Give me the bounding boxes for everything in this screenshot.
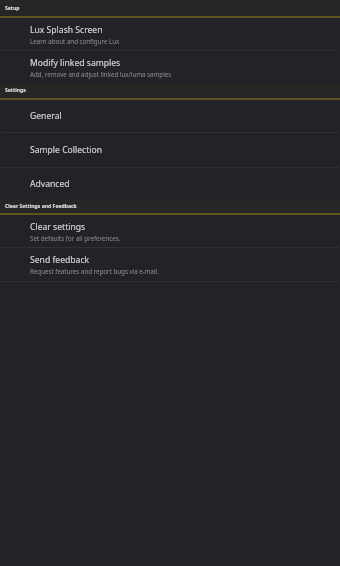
staticText: Sample Collection bbox=[30, 144, 103, 156]
button[interactable]: Advanced bbox=[0, 168, 340, 199]
button[interactable]: Lux Splash Screen bbox=[0, 18, 340, 50]
button[interactable]: Sample Collection bbox=[0, 133, 340, 167]
button[interactable]: Send feedback bbox=[0, 248, 340, 281]
staticText: Send feedback bbox=[30, 254, 90, 266]
staticText: Settings bbox=[5, 87, 26, 94]
staticText: Modify linked samples bbox=[30, 57, 121, 69]
staticText: Lux Splash Screen bbox=[30, 24, 103, 36]
staticText: Add, remove and adjust linked lux/luma s… bbox=[30, 70, 172, 78]
button[interactable]: General bbox=[0, 100, 340, 132]
staticText: Advanced bbox=[30, 178, 70, 190]
staticText: Set defaults for all preferences. bbox=[30, 234, 121, 242]
button[interactable]: Modify linked samples bbox=[0, 51, 340, 83]
staticText: Clear settings bbox=[30, 221, 86, 233]
staticText: Clear Settings and Feedback bbox=[5, 203, 77, 210]
staticText: Setup bbox=[5, 5, 20, 12]
staticText: General bbox=[30, 110, 62, 122]
button[interactable]: Clear settings bbox=[0, 215, 340, 247]
staticText: Request features and report bugs via e-m… bbox=[30, 267, 159, 275]
staticText: Learn about and configure Lux bbox=[30, 37, 120, 45]
